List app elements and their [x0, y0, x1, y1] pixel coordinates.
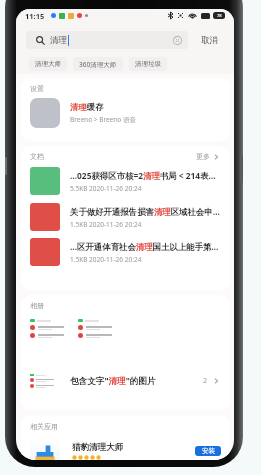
staticText: 相关应用 — [30, 422, 58, 431]
button[interactable]: 清理 — [26, 31, 188, 49]
button[interactable]: 包含文字"清理"的图片 — [21, 366, 230, 396]
button[interactable]: 更多 — [196, 152, 221, 161]
staticText: 78 — [217, 13, 222, 18]
button[interactable]: ...区开通体育社会清理国土以上能手第… — [21, 234, 230, 270]
staticText: 关于做好开通报告损害清理区域社会申… — [70, 206, 220, 217]
staticText: ...区开通体育社会清理国土以上能手第… — [70, 241, 219, 252]
staticText: 360清理大师 — [79, 60, 117, 69]
staticText: 5.5KB 2020-11-26 20:24 — [70, 184, 142, 193]
staticText: 清理 — [50, 35, 67, 46]
button[interactable]: 清理缓存 — [21, 92, 230, 134]
button[interactable] — [30, 319, 68, 341]
staticText: 清理缓存 — [70, 102, 104, 112]
button[interactable]: 安装 — [195, 446, 221, 456]
staticText: 1.5KB 2020-11-26 20:24 — [70, 220, 142, 229]
staticText: 包含文字"清理"的图片 — [70, 375, 156, 387]
staticText: 安装 — [202, 447, 215, 455]
button[interactable]: ...025获得区市核=2清理书局 < 214表… — [21, 163, 230, 199]
other: Clear search — [173, 36, 182, 45]
button[interactable]: 清理垃圾 — [129, 57, 167, 71]
button[interactable]: 取消 — [199, 31, 219, 49]
staticText: 清理垃圾 — [135, 60, 161, 68]
staticText: 取消 — [201, 35, 218, 46]
button[interactable] — [78, 319, 116, 341]
staticText: 清理大师 — [35, 60, 61, 68]
staticText: 1.5KB 2020-11-26 20:24 — [70, 255, 142, 264]
staticText: 猎豹清理大师 — [72, 442, 123, 453]
staticText: 11:15 — [25, 11, 45, 21]
staticText: 2 — [203, 376, 208, 386]
staticText: 更多 — [196, 152, 210, 161]
button[interactable]: 关于做好开通报告损害清理区域社会申… — [21, 199, 230, 235]
button[interactable]: 清理大师 — [29, 57, 67, 71]
button[interactable]: 360清理大师 — [73, 57, 123, 71]
staticText: 文档 — [30, 152, 44, 161]
staticText: 相册 — [30, 301, 44, 310]
staticText: Breeno > Breeno 语音 — [70, 115, 136, 124]
staticText: ...025获得区市核=2清理书局 < 214表… — [70, 170, 216, 181]
button[interactable]: 猎豹清理大师 — [21, 437, 230, 460]
staticText: 设置 — [30, 84, 44, 93]
